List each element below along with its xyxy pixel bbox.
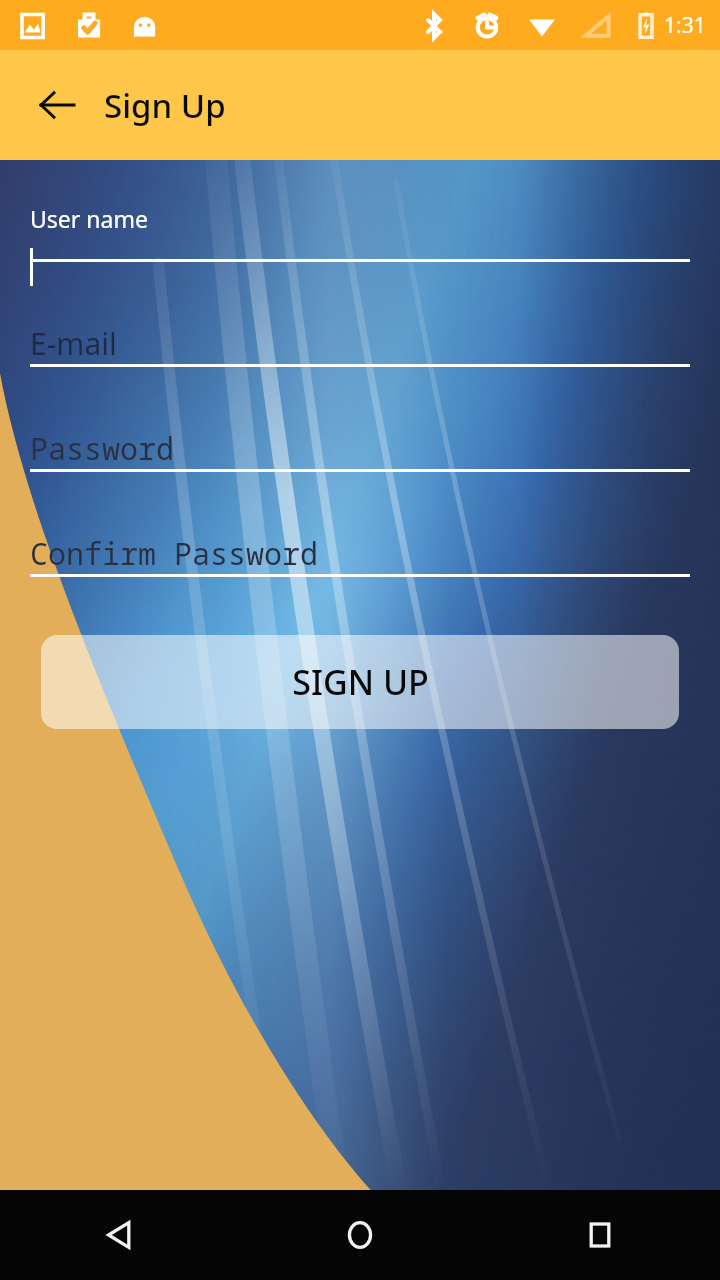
staticText: Confirm Password <box>30 533 318 574</box>
button[interactable]: E-mail <box>0 265 720 370</box>
button[interactable]: Recent apps <box>480 1190 720 1280</box>
button[interactable]: SIGN UP <box>41 635 679 729</box>
button[interactable]: User name <box>0 160 720 265</box>
staticText: User name <box>30 203 148 234</box>
button[interactable]: Home <box>240 1190 480 1280</box>
staticText: E-mail <box>30 323 117 364</box>
staticText: Sign Up <box>104 83 226 128</box>
button[interactable]: Password <box>0 370 720 475</box>
button[interactable]: Back <box>0 1190 240 1280</box>
button[interactable]: Confirm Password <box>0 475 720 580</box>
button[interactable]: Back <box>22 70 92 140</box>
staticText: Password <box>30 428 174 469</box>
staticText: 1:31 <box>664 11 706 40</box>
staticText: SIGN UP <box>292 659 429 705</box>
